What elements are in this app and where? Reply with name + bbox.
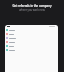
button[interactable] [5,28,58,32]
button[interactable] [5,44,58,48]
button[interactable] [5,36,58,40]
button[interactable] [5,48,58,52]
staticText: where you work now [19,8,45,12]
button[interactable] [5,40,58,44]
staticText: Get referrals in the company [12,4,52,8]
button[interactable] [5,32,58,36]
